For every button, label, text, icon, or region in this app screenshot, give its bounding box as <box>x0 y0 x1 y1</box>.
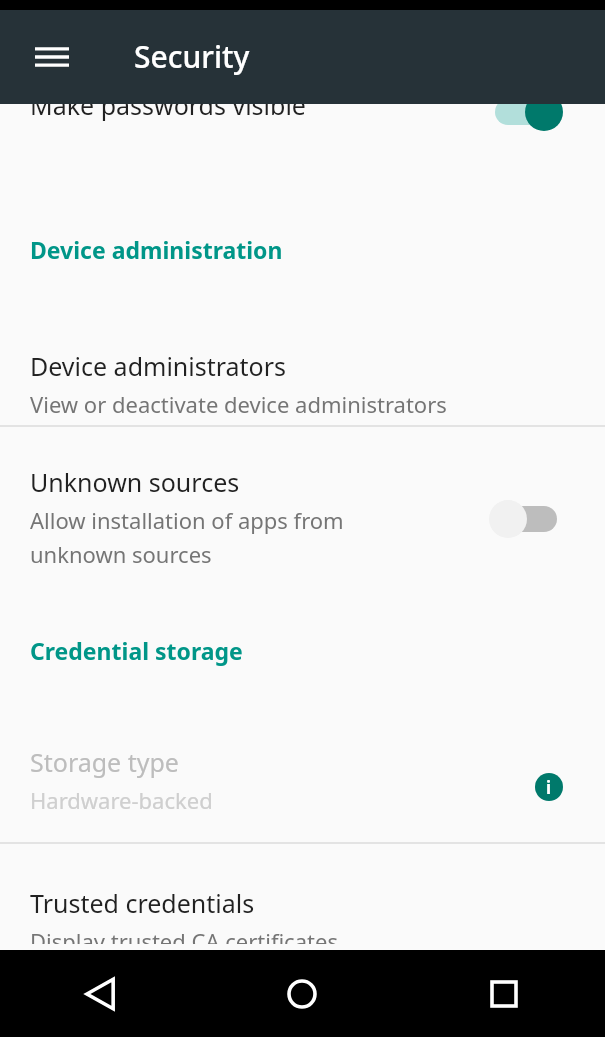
staticText: Allow installation of apps from <box>30 505 344 535</box>
button[interactable]: Storage type information <box>523 761 575 813</box>
staticText: unknown sources <box>30 539 212 569</box>
staticText: Device administration <box>30 234 283 265</box>
staticText: Display trusted CA certificates <box>30 926 338 944</box>
button[interactable]: Back <box>0 950 201 1037</box>
button[interactable]: Open navigation drawer <box>28 33 76 81</box>
button[interactable]: Make passwords visible toggle <box>489 92 563 132</box>
staticText: i <box>546 776 552 799</box>
staticText: Hardware-backed <box>30 785 213 815</box>
staticText: Credential storage <box>30 635 243 666</box>
staticText: Trusted credentials <box>30 886 255 920</box>
staticText: View or deactivate device administrators <box>30 389 447 419</box>
button[interactable]: Device administrators <box>0 331 605 425</box>
staticText: Device administrators <box>30 349 287 383</box>
staticText: Unknown sources <box>30 465 240 499</box>
staticText: Storage type <box>30 745 179 779</box>
button[interactable]: Home <box>201 950 403 1037</box>
button[interactable]: Make passwords visible <box>0 104 605 166</box>
button[interactable]: Trusted credentials <box>0 844 605 944</box>
button[interactable]: Unknown sources toggle <box>489 499 563 539</box>
button[interactable]: Unknown sources <box>0 427 605 593</box>
staticText: Security <box>134 36 250 77</box>
button[interactable]: Recent apps <box>403 950 605 1037</box>
staticText: Make passwords visible <box>30 88 306 122</box>
button[interactable]: Storage type <box>0 732 605 842</box>
